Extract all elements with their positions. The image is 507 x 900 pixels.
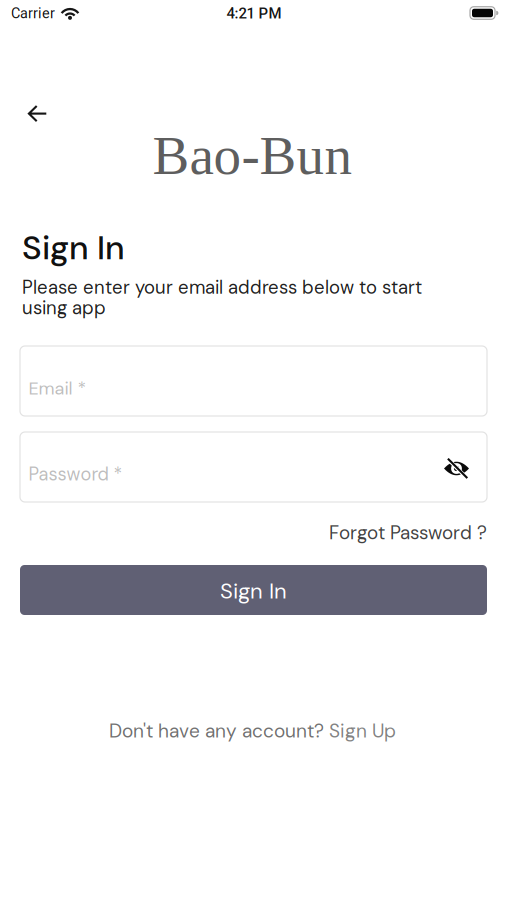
staticText: Carrier — [11, 5, 55, 22]
staticText: using app — [22, 296, 106, 320]
staticText: Don't have any account? — [109, 719, 324, 743]
staticText: Sign In — [220, 577, 287, 605]
button[interactable] — [19, 97, 55, 130]
button[interactable]: Sign In — [20, 565, 487, 615]
staticText: Please enter your email address below to… — [22, 275, 422, 300]
button[interactable]: Email * — [20, 346, 487, 416]
staticText: Bao-Bun — [152, 125, 352, 186]
button[interactable]: Forgot Password ? — [329, 520, 487, 545]
staticText: Sign Up — [329, 719, 396, 743]
staticText: Forgot Password ? — [329, 520, 487, 545]
button[interactable] — [437, 451, 475, 485]
button[interactable]: Password * — [20, 432, 487, 502]
staticText: Email * — [28, 376, 86, 400]
staticText: 4:21 PM — [226, 5, 281, 22]
staticText: Sign In — [22, 226, 125, 270]
staticText: Password * — [28, 462, 122, 486]
button[interactable]: Sign Up — [329, 719, 396, 743]
